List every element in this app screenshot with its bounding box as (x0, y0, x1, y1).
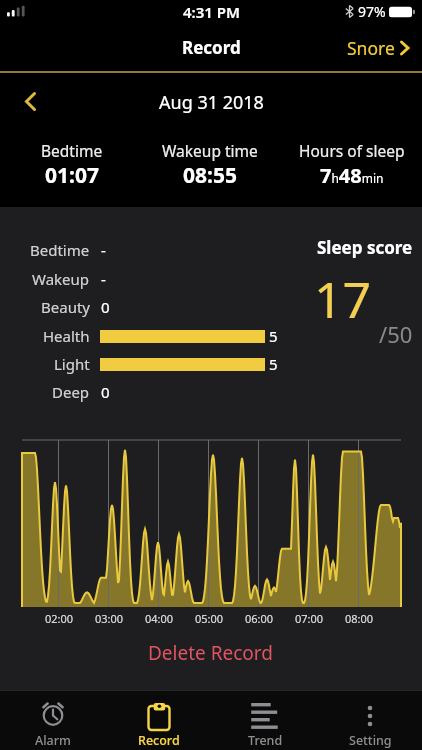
staticText: Record (182, 36, 241, 59)
staticText: 05:00 (195, 611, 224, 626)
staticText: Delete Record (148, 640, 274, 666)
button[interactable]: Record (106, 691, 212, 750)
staticText: 97% (358, 2, 386, 21)
staticText: - (101, 269, 106, 289)
staticText: 01:07 (45, 161, 99, 189)
staticText: Beauty (41, 297, 90, 317)
staticText: 4:31 PM (183, 2, 240, 22)
button[interactable]: Setting (318, 691, 422, 750)
staticText: 02:00 (45, 611, 74, 626)
staticText: Health (43, 326, 90, 346)
button[interactable]: Delete Record (0, 640, 422, 666)
staticText: 5 (269, 354, 278, 374)
staticText: 17 (314, 265, 372, 331)
staticText: 7h48min (320, 162, 384, 189)
button[interactable] (24, 92, 38, 112)
staticText: Light (54, 354, 90, 374)
staticText: 07:00 (295, 611, 324, 626)
staticText: 08:00 (345, 611, 374, 626)
button[interactable]: Snore (347, 36, 410, 60)
staticText: Sleep score (317, 236, 413, 258)
staticText: Wakeup time (162, 140, 258, 161)
staticText: Deep (52, 382, 90, 402)
staticText: - (101, 240, 106, 260)
button[interactable]: Trend (212, 691, 318, 750)
staticText: Bedtime (41, 140, 103, 161)
staticText: 0 (101, 297, 110, 317)
staticText: 04:00 (145, 611, 174, 626)
staticText: 08:55 (183, 161, 237, 189)
staticText: Wakeup (32, 269, 90, 289)
staticText: Record (138, 732, 180, 749)
staticText: 03:00 (95, 611, 124, 626)
staticText: /50 (379, 319, 413, 347)
staticText: 5 (269, 326, 278, 346)
staticText: 0 (101, 382, 110, 402)
staticText: Aug 31 2018 (159, 90, 264, 114)
staticText: Snore (347, 36, 395, 60)
staticText: Hours of sleep (299, 140, 405, 161)
staticText: Alarm (35, 732, 71, 749)
staticText: 06:00 (245, 611, 274, 626)
staticText: Setting (349, 732, 392, 749)
staticText: Trend (248, 732, 283, 749)
button[interactable]: Alarm (0, 691, 106, 750)
staticText: Bedtime (30, 240, 90, 260)
